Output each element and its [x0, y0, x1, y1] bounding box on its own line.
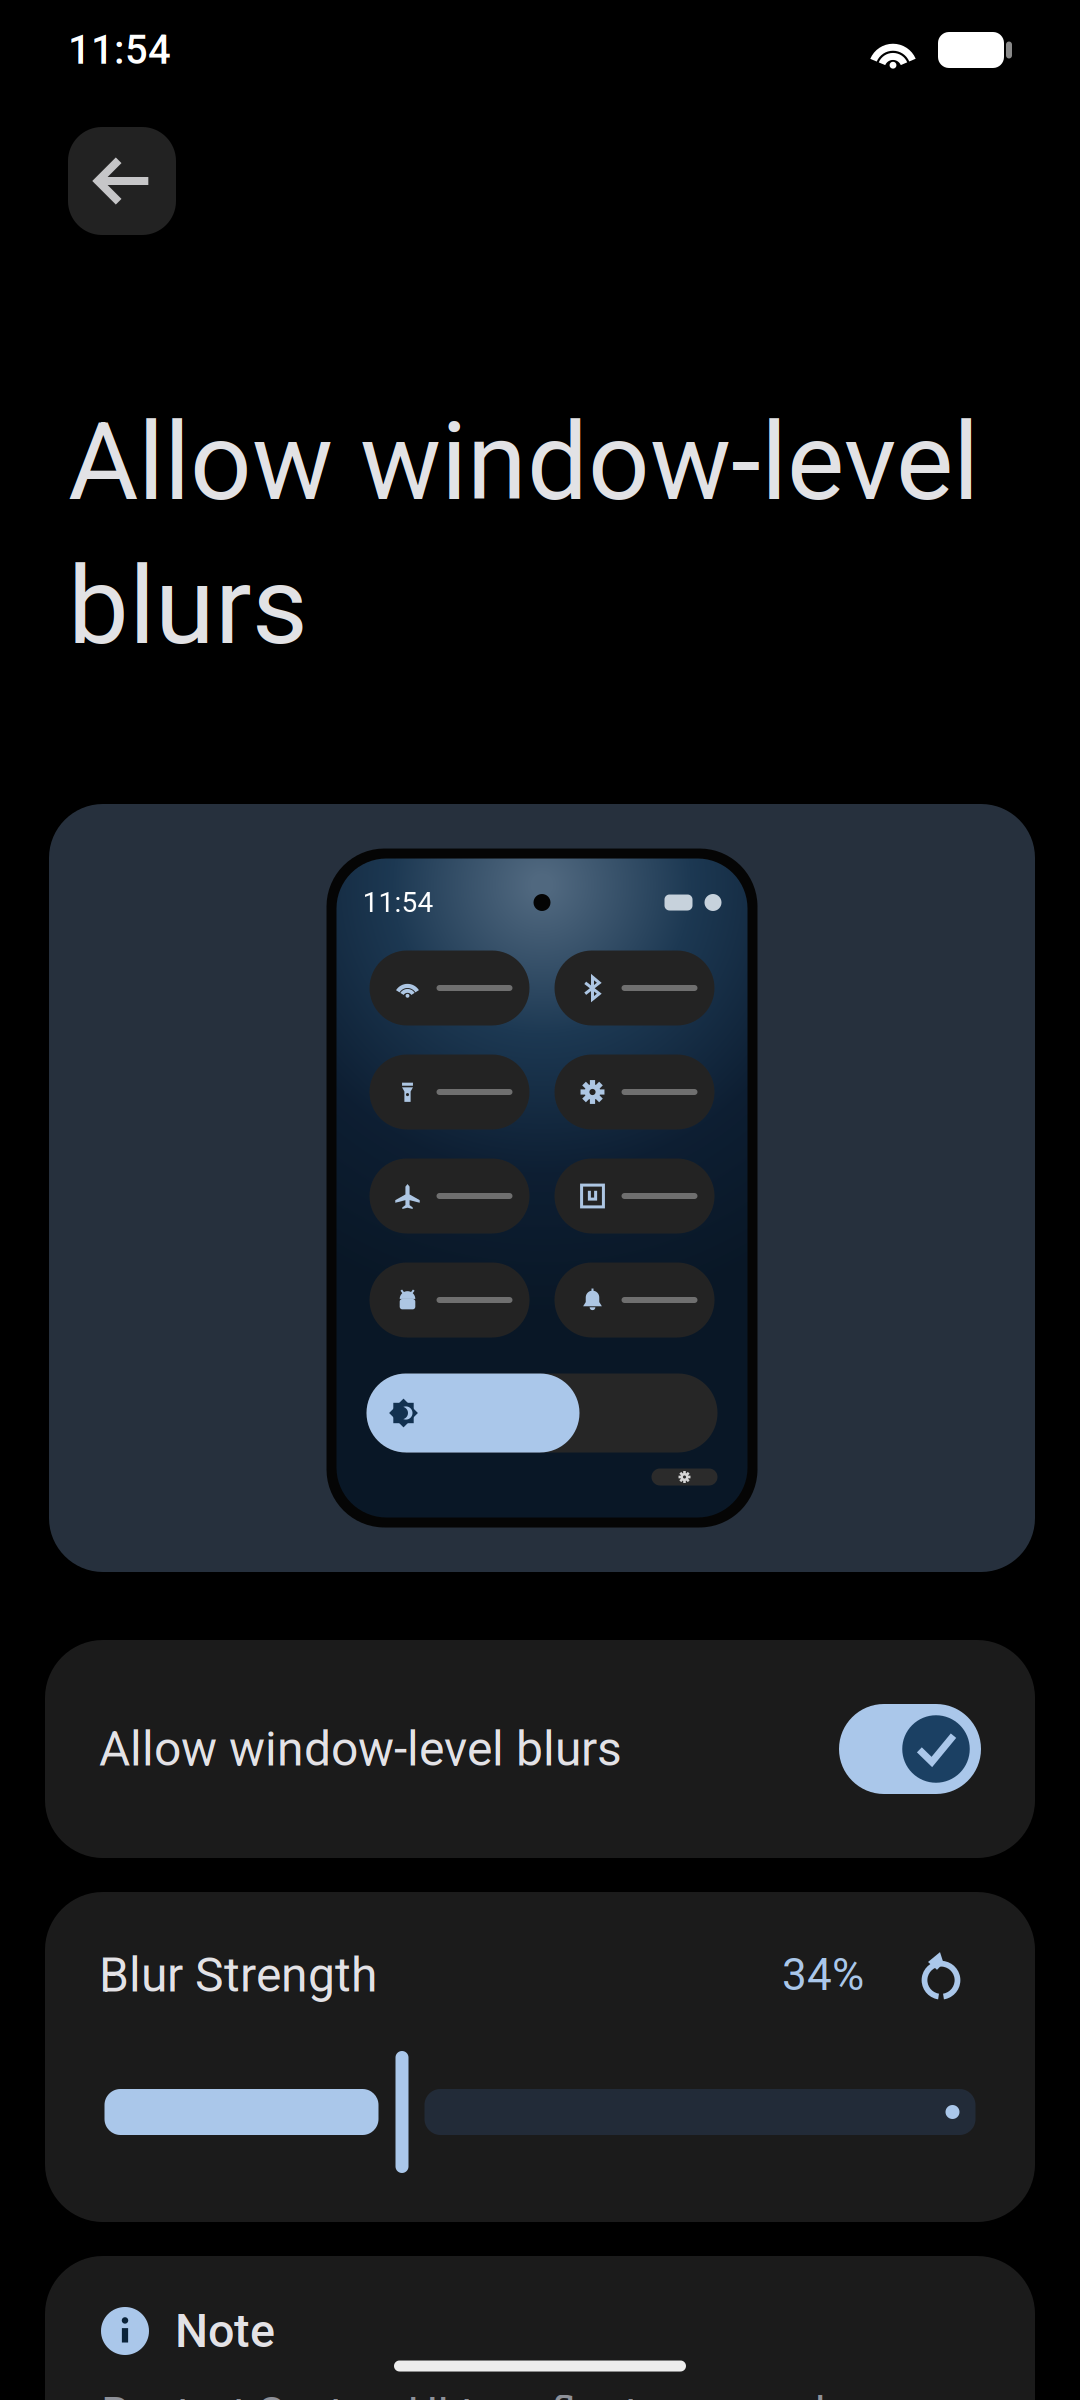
staticText: Blur Strength — [99, 1947, 377, 2003]
staticText: Allow window-level blurs — [99, 1721, 622, 1777]
staticText: 34% — [782, 1949, 864, 2001]
staticText: 11:54 — [362, 886, 433, 919]
staticText: 11:54 — [68, 27, 171, 73]
button[interactable]: Reset — [916, 1949, 966, 2001]
staticText: Restart SystemUI to reflect proper chang… — [101, 2388, 962, 2400]
staticText: blurs — [68, 543, 308, 669]
button[interactable]: Allow window-level blurs — [45, 1640, 1035, 1858]
staticText: Note — [175, 2304, 275, 2358]
button[interactable]: Back — [68, 127, 176, 235]
staticText: Allow window-level — [68, 399, 979, 525]
